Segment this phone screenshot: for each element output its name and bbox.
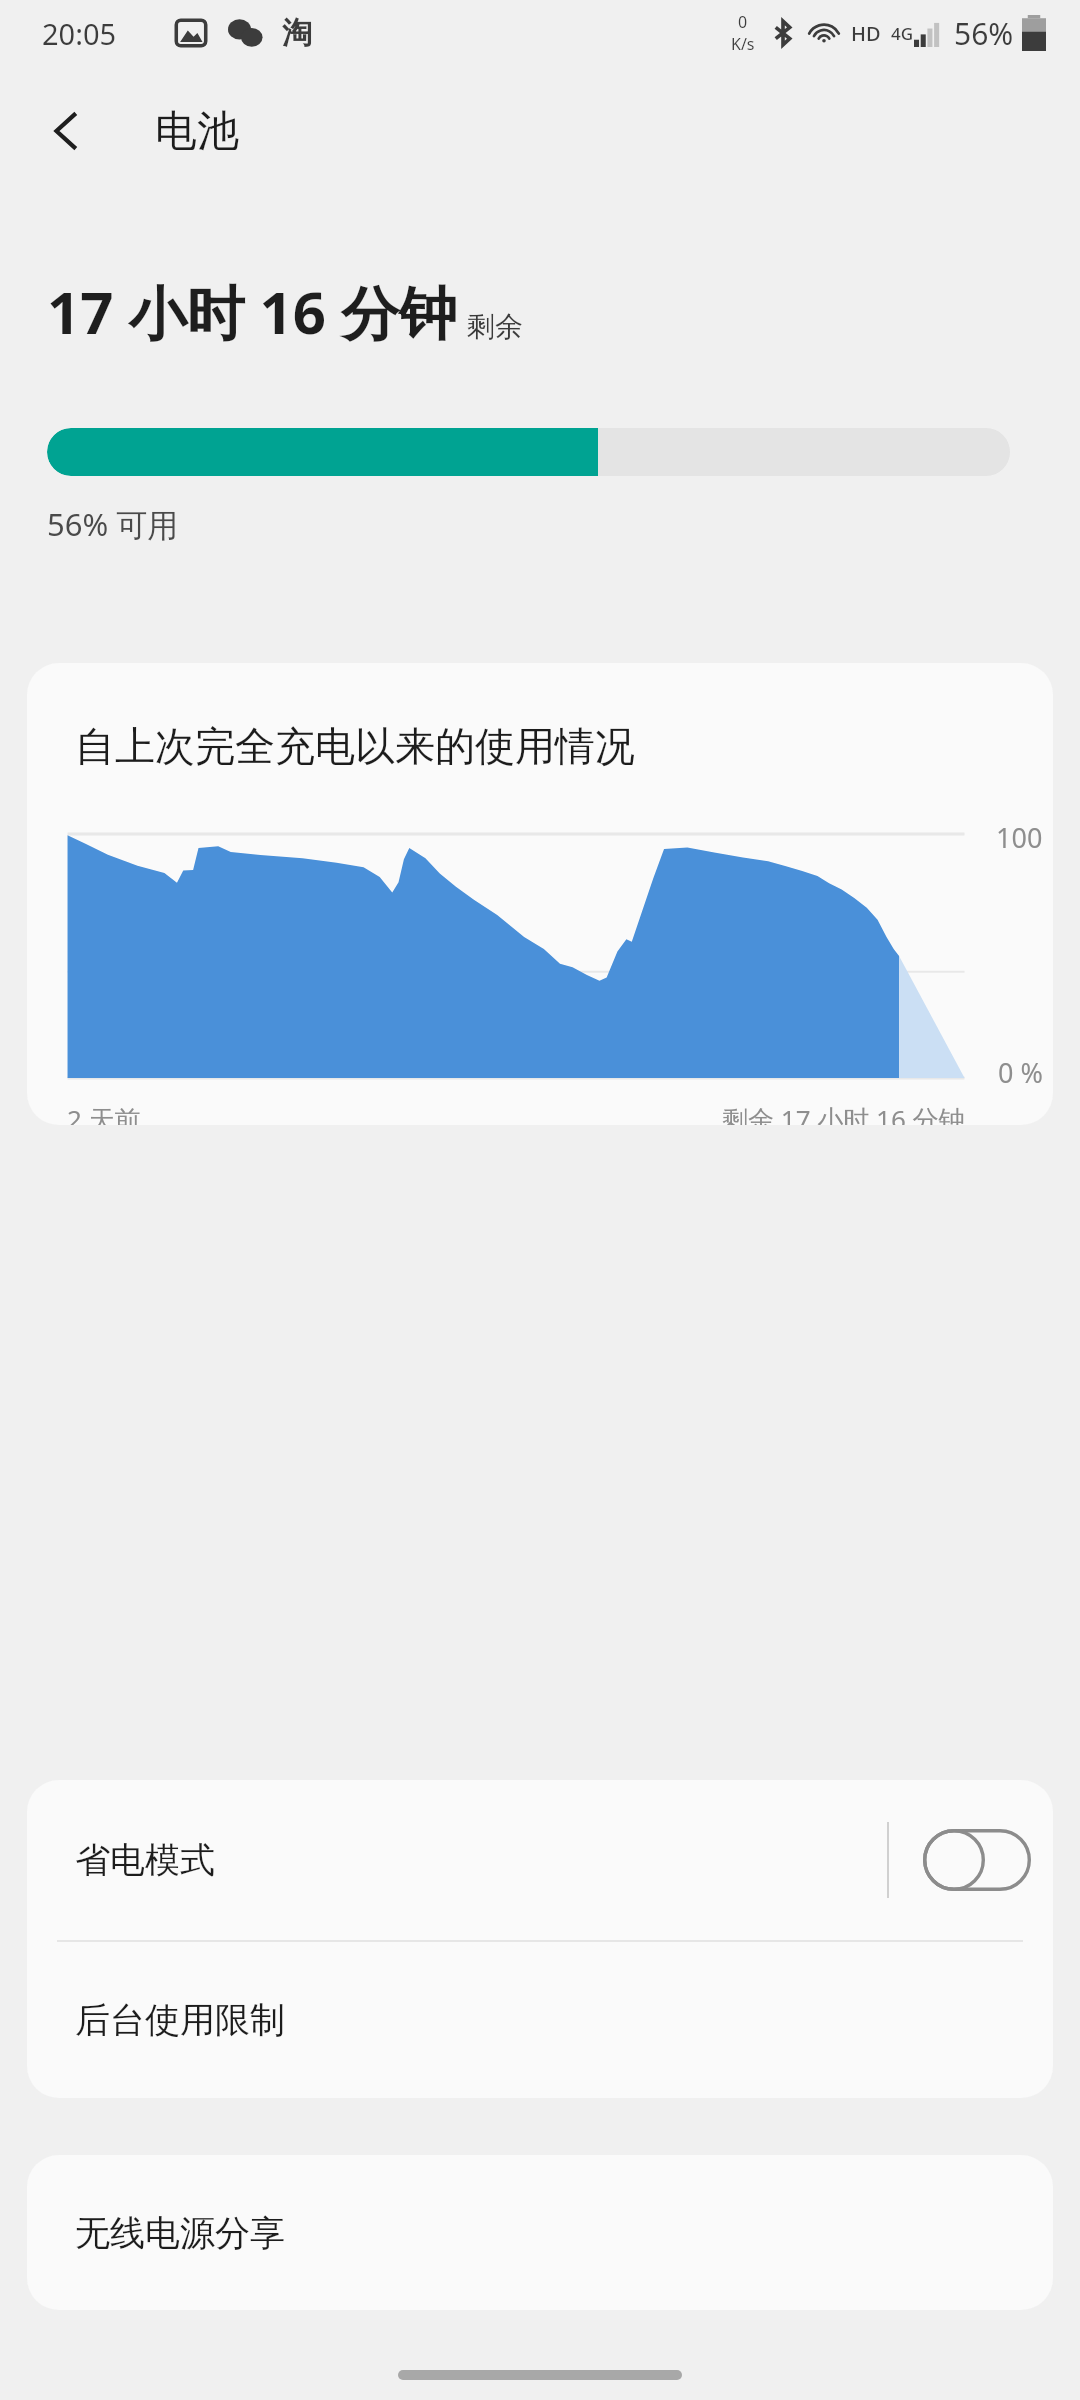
staticText: 淘 [282,14,312,52]
staticText: 56% 可用 [47,503,179,545]
staticText: 剩余 [467,309,523,344]
staticText: 电池 [155,105,239,158]
staticText: 4G [891,22,914,45]
staticText: 17 小时 16 分钟 [47,272,457,351]
staticText: 后台使用限制 [75,1998,285,2042]
button[interactable]: 无线电源分享 [27,2155,1053,2310]
staticText: K/s [731,33,755,55]
staticText: 20:05 [42,14,117,53]
button[interactable]: 自上次完全充电以来的使用情况 [27,663,1053,1125]
staticText: HD [851,20,881,47]
staticText: 省电模式 [75,1838,215,1882]
staticText: 56% [954,13,1014,54]
staticText: 100 [996,819,1043,856]
button[interactable]: 后台使用限制 [27,1942,1053,2098]
staticText: 剩余 17 小时 16 分钟 [722,1101,965,1125]
staticText: 2 天前 [67,1101,141,1125]
button[interactable]: 返回 [22,86,112,176]
staticText: 无线电源分享 [75,2211,285,2255]
button[interactable]: 省电模式开关 [923,1829,1031,1891]
staticText: 0 [738,11,748,33]
staticText: 自上次完全充电以来的使用情况 [75,721,635,771]
button[interactable]: 省电模式 [27,1780,1053,1940]
staticText: 0 % [998,1054,1043,1091]
